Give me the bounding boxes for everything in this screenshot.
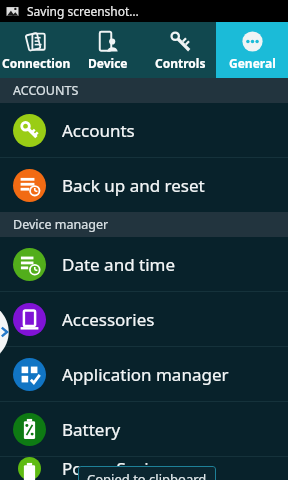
button[interactable]: Accounts [0, 103, 288, 157]
staticText: Accessories [62, 308, 155, 331]
staticText: Power Saving [62, 457, 170, 480]
button[interactable]: General [216, 22, 288, 78]
button[interactable]: Back up and reset [0, 158, 288, 212]
button[interactable]: Application manager [0, 347, 288, 401]
staticText: Copied to clipboard [87, 470, 207, 480]
staticText: Controls [155, 55, 206, 71]
staticText: Accounts [62, 119, 135, 142]
staticText: Device [88, 55, 128, 71]
staticText: Back up and reset [62, 174, 205, 197]
staticText: Battery [62, 418, 121, 441]
staticText: Date and time [62, 253, 176, 276]
button[interactable]: Battery [0, 402, 288, 456]
button[interactable]: Date and time [0, 237, 288, 291]
button[interactable]: Accessories [0, 292, 288, 346]
button[interactable]: Connection [0, 22, 72, 78]
button[interactable]: Power Saving [0, 457, 288, 480]
staticText: General [229, 55, 276, 71]
staticText: Saving screenshot… [27, 3, 139, 19]
staticText: Application manager [62, 363, 229, 386]
button[interactable] [0, 300, 20, 364]
button[interactable]: Controls [144, 22, 216, 78]
staticText: ACCOUNTS [13, 82, 79, 99]
staticText: Device manager [13, 216, 109, 233]
button[interactable]: Device [72, 22, 144, 78]
staticText: Connection [2, 55, 71, 71]
